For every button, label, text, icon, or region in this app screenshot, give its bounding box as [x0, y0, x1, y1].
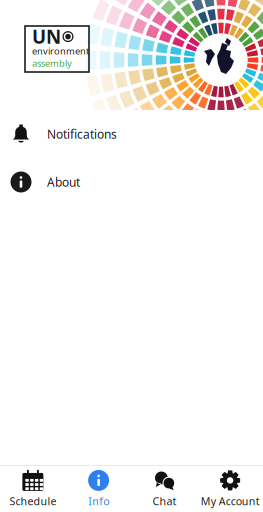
button[interactable]: Notifications — [0, 110, 263, 158]
staticText: My Account — [201, 494, 260, 508]
staticText: About — [47, 174, 80, 190]
staticText: UN — [32, 24, 61, 49]
button[interactable]: Schedule — [0, 466, 66, 512]
staticText: Schedule — [9, 494, 56, 508]
button[interactable]: My Account — [197, 466, 263, 512]
button[interactable]: About — [0, 158, 263, 206]
staticText: Chat — [152, 494, 176, 508]
button[interactable]: Chat — [131, 466, 197, 512]
staticText: assembly — [32, 57, 72, 69]
staticText: Info — [88, 494, 109, 508]
button[interactable]: Info — [66, 466, 132, 512]
staticText: environment — [32, 45, 89, 57]
staticText: Notifications — [47, 126, 117, 142]
